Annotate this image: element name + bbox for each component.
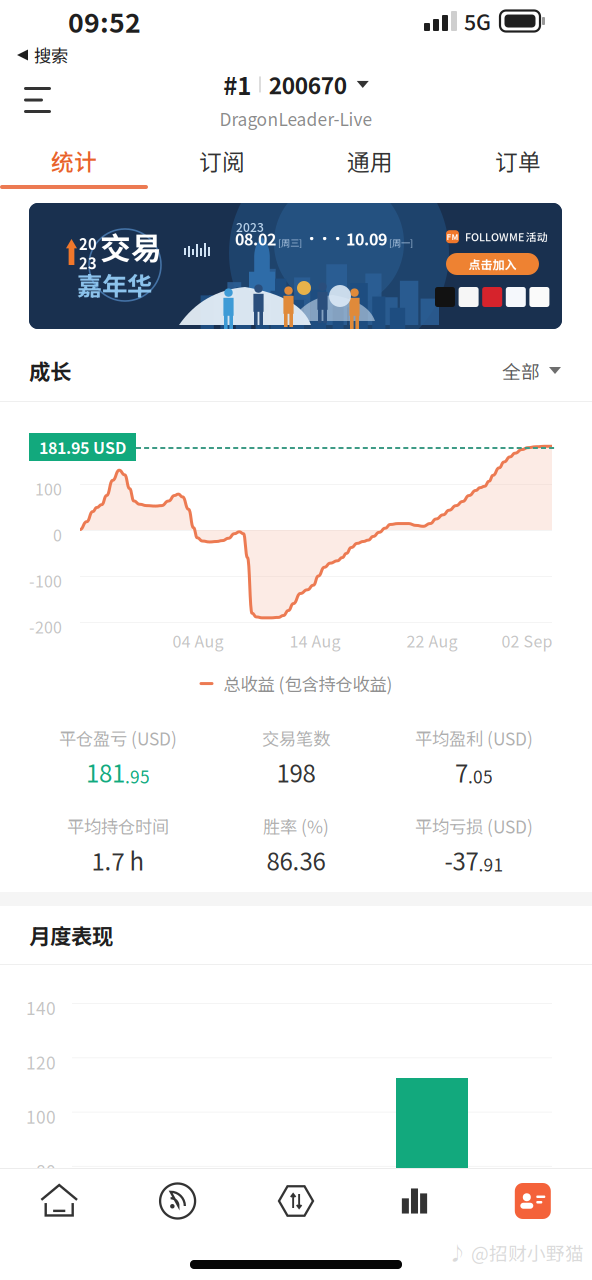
staticText: 140 xyxy=(26,995,56,1020)
button[interactable]: 订单 xyxy=(444,132,592,189)
staticText: 200670 xyxy=(269,68,347,101)
staticText: 100 xyxy=(26,1104,56,1129)
staticText: 月度表现 xyxy=(29,920,113,950)
button[interactable]: 全部 xyxy=(502,357,561,384)
button[interactable]: Feed xyxy=(118,1169,237,1233)
staticText: 平均亏损 (USD) xyxy=(415,813,533,839)
staticText: 统计 xyxy=(51,144,97,177)
staticText: 交易 xyxy=(100,224,162,268)
button[interactable]: Statistics xyxy=(355,1169,474,1233)
staticText: 7 xyxy=(455,755,468,789)
staticText: 20 xyxy=(79,233,97,254)
staticText: 平均持仓时间 xyxy=(67,813,169,839)
staticText: 02 Sep xyxy=(501,629,552,652)
staticText: 08.02 xyxy=(235,227,276,250)
staticText: 80 xyxy=(36,1158,56,1183)
button[interactable]: Trade xyxy=(237,1169,355,1233)
staticText: 平仓盈亏 (USD) xyxy=(59,725,177,751)
staticText: [周一] xyxy=(389,236,413,249)
staticText: -200 xyxy=(29,615,62,638)
button[interactable]: 统计 xyxy=(0,132,148,189)
staticText: 嘉年华 xyxy=(77,266,152,303)
staticText: 23 xyxy=(79,252,97,273)
staticText: 181.95 USD xyxy=(39,435,126,459)
staticText: [周三] xyxy=(278,236,302,249)
staticText: 86.36 xyxy=(266,843,325,877)
staticText: 14 Aug xyxy=(289,629,340,652)
staticText: 通用 xyxy=(347,144,393,177)
staticText: 5G xyxy=(464,6,491,36)
staticText: ••• xyxy=(305,229,344,248)
staticText: .91 xyxy=(478,851,503,876)
button[interactable]: Profile xyxy=(474,1169,592,1233)
staticText: 120 xyxy=(26,1049,56,1074)
staticText: 2023 xyxy=(236,218,264,235)
staticText: 订单 xyxy=(495,144,541,177)
button[interactable]: 订阅 xyxy=(148,132,296,189)
staticText: 交易笔数 xyxy=(262,725,330,751)
staticText: 成长 xyxy=(29,355,71,386)
staticText: .05 xyxy=(468,763,493,788)
staticText: 胜率 (%) xyxy=(263,813,329,839)
staticText: FM xyxy=(446,231,458,242)
staticText: FOLLOWME 活动 xyxy=(465,229,548,244)
staticText: 22 Aug xyxy=(406,629,457,652)
button[interactable]: 通用 xyxy=(296,132,444,189)
staticText: .95 xyxy=(125,763,150,788)
staticText: 总收益 (包含持仓收益) xyxy=(223,671,392,696)
staticText: 100 xyxy=(35,477,62,500)
staticText: DragonLeader-Live xyxy=(219,106,372,131)
staticText: 订阅 xyxy=(199,144,245,177)
staticText: 181 xyxy=(86,755,125,789)
button[interactable]: 交易嘉年华 promotion xyxy=(0,189,592,340)
button[interactable]: Home xyxy=(0,1169,118,1233)
staticText: 04 Aug xyxy=(172,629,223,652)
staticText: 点击加入 xyxy=(468,255,516,273)
staticText: -37 xyxy=(444,843,478,877)
staticText: -100 xyxy=(29,569,62,592)
staticText: 0 xyxy=(53,523,62,546)
staticText: ♪ @招财小野猫 xyxy=(448,1239,584,1266)
staticText: 198 xyxy=(276,755,315,789)
staticText: 平均盈利 (USD) xyxy=(415,725,533,751)
staticText: #1 xyxy=(223,67,251,102)
staticText: 1.7 h xyxy=(91,843,144,877)
button[interactable]: Menu xyxy=(0,68,71,132)
staticText: 全部 xyxy=(502,357,540,384)
staticText: 搜索 xyxy=(34,42,68,68)
staticText: 09:52 xyxy=(68,2,141,40)
staticText: 10.09 xyxy=(346,227,387,250)
